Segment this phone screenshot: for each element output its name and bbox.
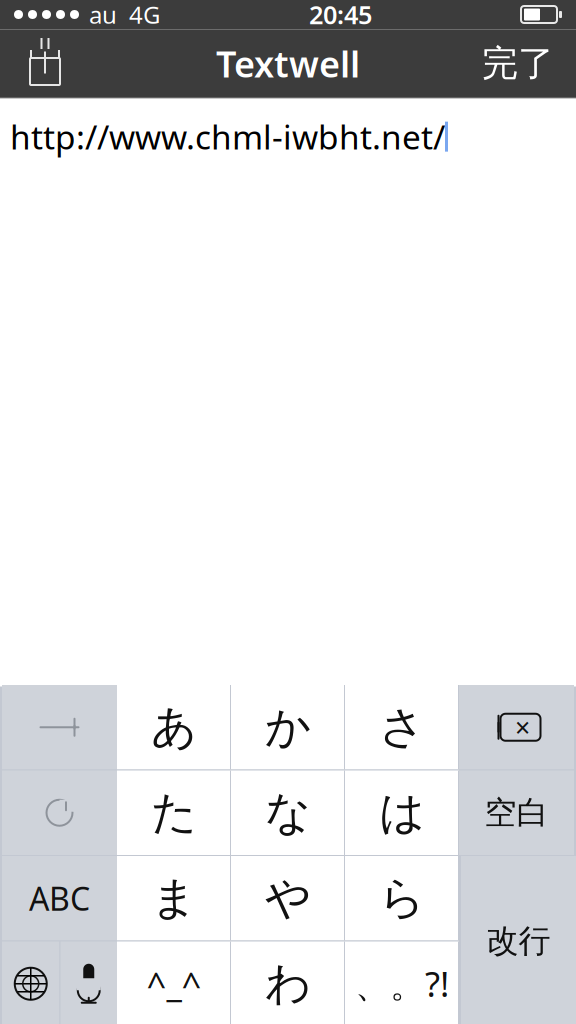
staticText: ABC: [29, 877, 90, 919]
staticText: や: [265, 870, 311, 926]
button[interactable]: ^_^: [117, 941, 231, 1024]
button[interactable]: Key: [2, 770, 117, 855]
button[interactable]: Share: [6, 29, 84, 97]
staticText: た: [151, 785, 197, 841]
button[interactable]: ま: [117, 856, 231, 940]
staticText: わ: [265, 956, 311, 1012]
button[interactable]: 完了: [466, 29, 570, 97]
button[interactable]: さ: [345, 685, 459, 769]
staticText: ×: [515, 709, 530, 745]
staticText: は: [379, 785, 425, 841]
button[interactable]: か: [231, 685, 345, 769]
button[interactable]: Key: [2, 685, 117, 769]
button[interactable]: や: [231, 856, 345, 940]
button[interactable]: た: [117, 770, 231, 855]
staticText: か: [265, 699, 311, 755]
staticText: 、。?!: [355, 961, 449, 1007]
staticText: au: [89, 0, 117, 30]
button[interactable]: わ: [231, 941, 345, 1024]
staticText: な: [265, 785, 311, 841]
staticText: 空白: [484, 793, 548, 832]
staticText: 完了: [482, 41, 554, 86]
button[interactable]: Key: [60, 941, 117, 1024]
button[interactable]: あ: [117, 685, 231, 769]
button[interactable]: な: [231, 770, 345, 855]
staticText: Textwell: [216, 40, 360, 87]
staticText: ま: [151, 870, 197, 926]
button[interactable]: Key: [2, 941, 59, 1024]
button[interactable]: Key: [459, 685, 574, 769]
button[interactable]: ABC: [2, 856, 117, 940]
button[interactable]: 空白: [459, 770, 574, 855]
staticText: http://www.chml-iwbht.net/: [10, 114, 445, 159]
staticText: 4G: [129, 0, 160, 30]
staticText: 改行: [486, 921, 550, 961]
staticText: 20:45: [309, 0, 372, 31]
staticText: あ: [151, 699, 197, 755]
staticText: さ: [379, 699, 425, 755]
button[interactable]: 改行: [461, 856, 576, 1024]
staticText: ^_^: [146, 961, 201, 1007]
button[interactable]: 、。?!: [345, 941, 459, 1024]
staticText: ら: [379, 870, 425, 926]
button[interactable]: は: [345, 770, 459, 855]
button[interactable]: ら: [345, 856, 459, 940]
